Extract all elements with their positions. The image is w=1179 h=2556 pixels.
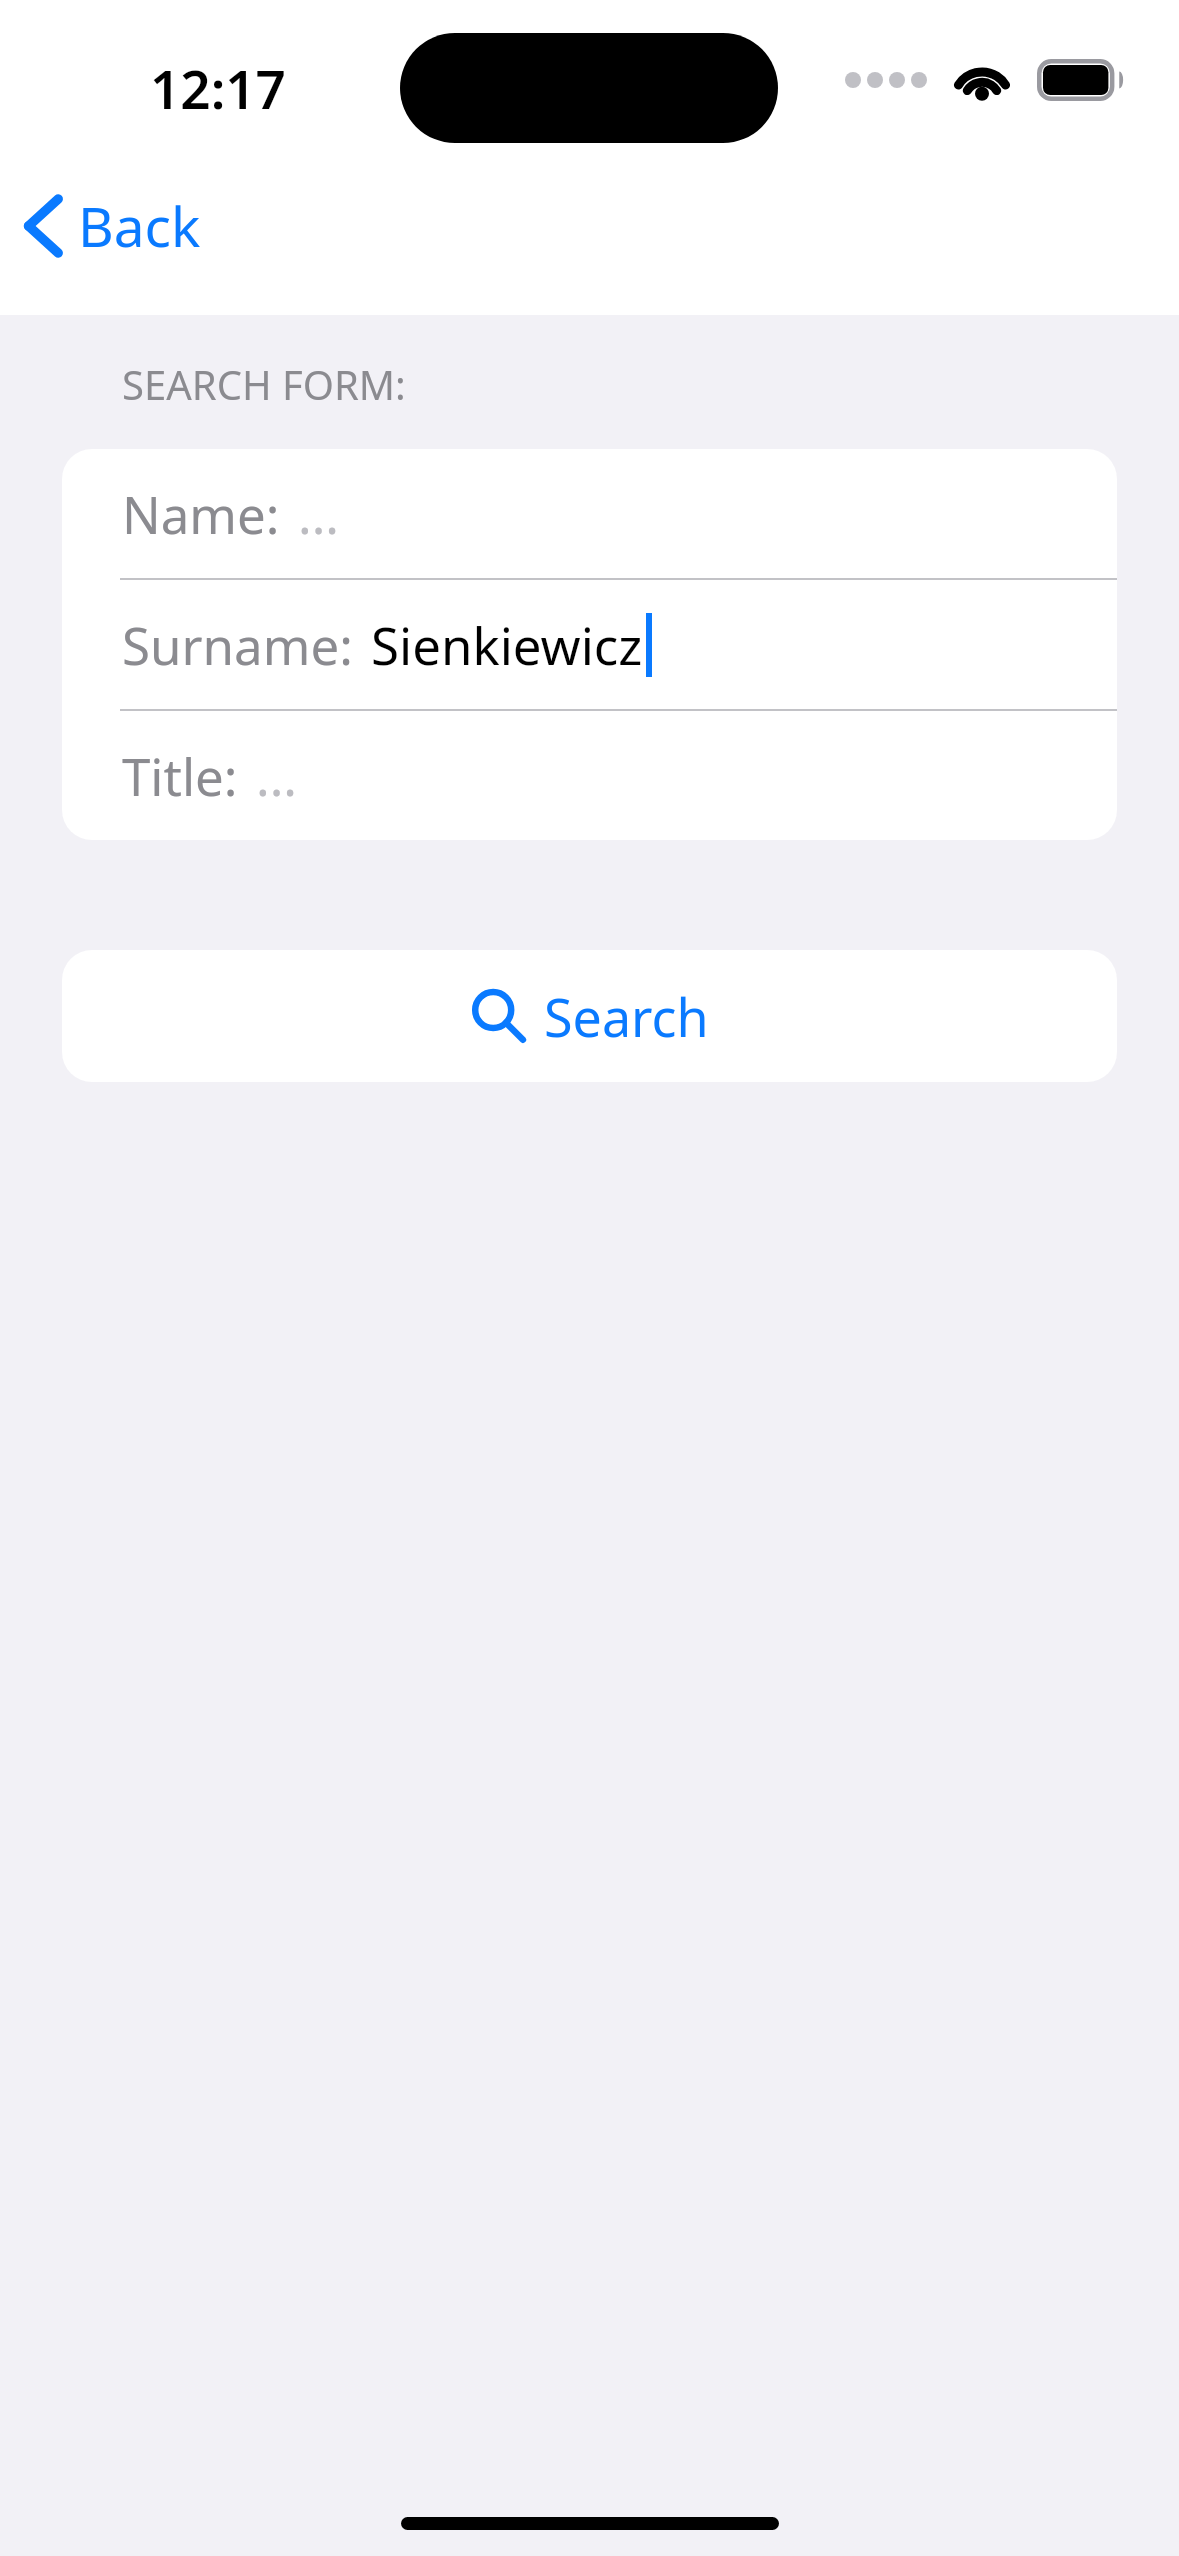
staticText: Title: xyxy=(122,741,238,810)
button[interactable]: Back xyxy=(12,180,213,271)
button[interactable]: Search xyxy=(62,950,1117,1082)
staticText: ... xyxy=(298,479,340,548)
staticText: ... xyxy=(256,741,298,810)
button[interactable]: Title: xyxy=(62,711,1117,840)
button[interactable]: Name: xyxy=(62,449,1117,578)
staticText: Name: xyxy=(122,479,280,548)
staticText: SEARCH FORM: xyxy=(122,357,406,411)
button[interactable]: Surname: xyxy=(62,580,1117,709)
staticText: Sienkiewicz xyxy=(371,610,643,679)
staticText: Back xyxy=(78,188,201,263)
staticText: Search xyxy=(544,981,709,1052)
staticText: 12:17 xyxy=(150,52,286,124)
staticText: Surname: xyxy=(122,610,353,679)
